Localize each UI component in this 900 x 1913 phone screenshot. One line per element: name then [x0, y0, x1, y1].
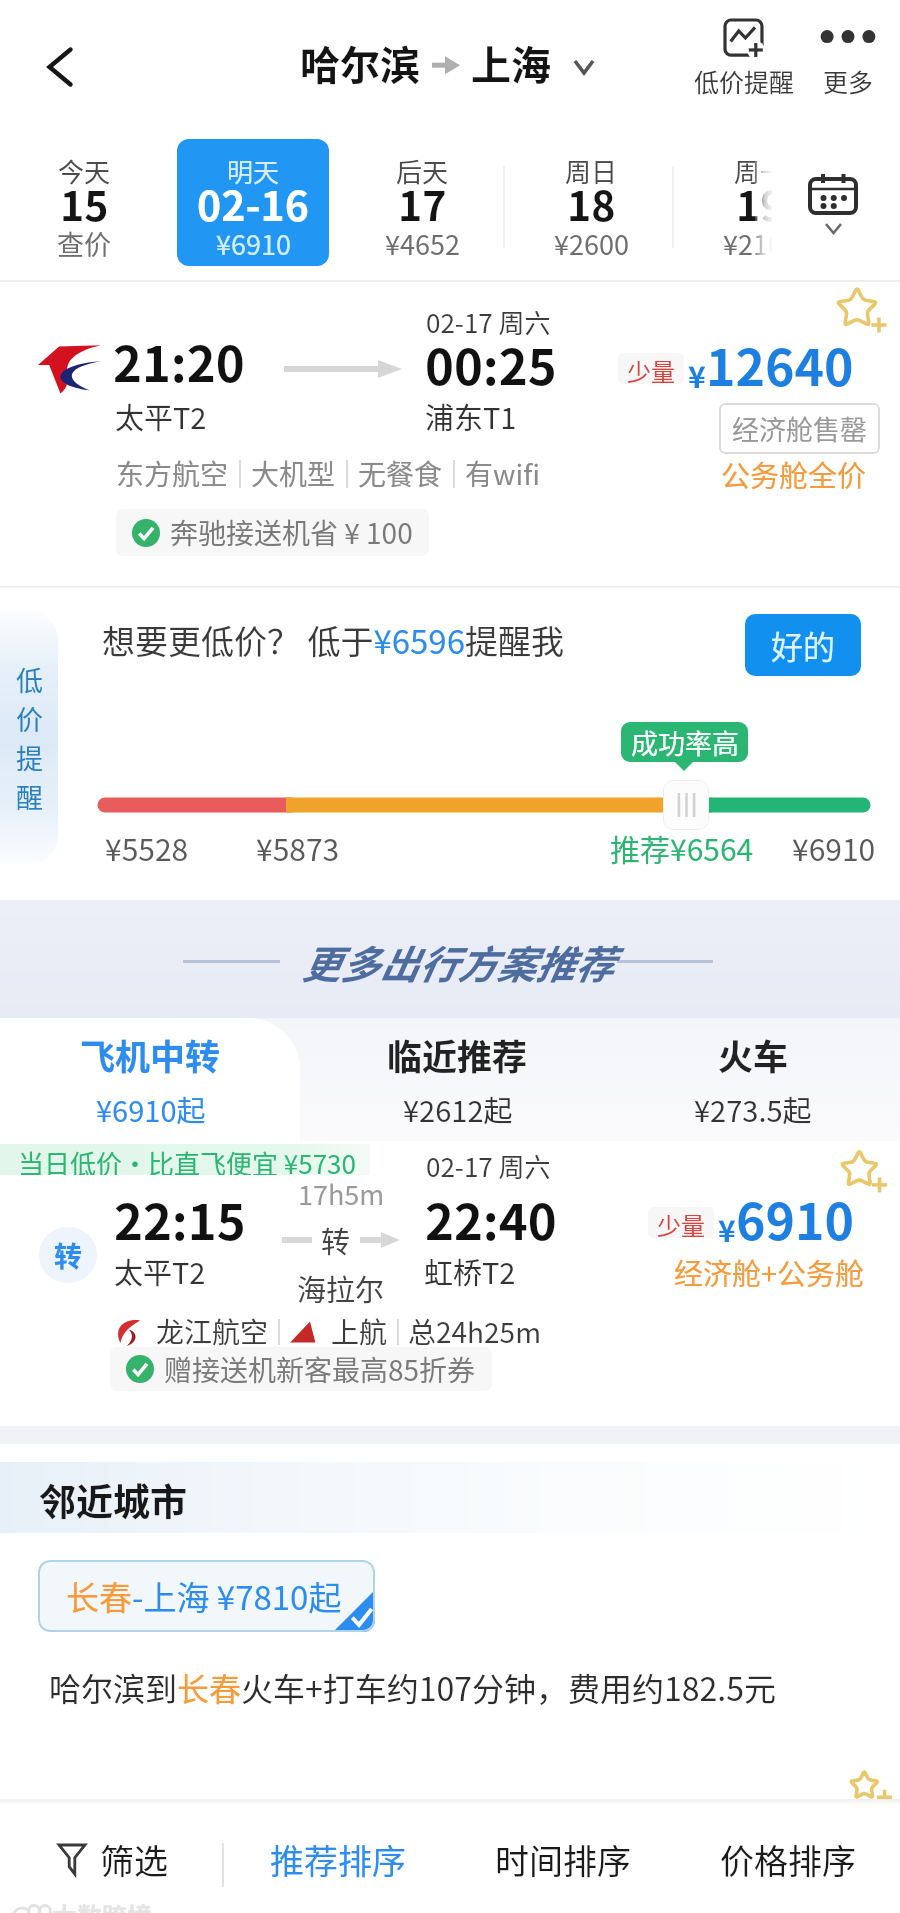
staticText: 明天 [227, 152, 280, 190]
staticText: 总24h25m [408, 1311, 542, 1352]
staticText: 12640 [706, 328, 854, 400]
staticText: 上海 [471, 34, 551, 92]
staticText: 奔驰接送机省 ¥ 100 [170, 512, 413, 553]
staticText: 公务舱全价 [721, 453, 867, 495]
staticText: 周一 [734, 152, 787, 190]
button[interactable]: 筛选 [0, 1805, 225, 1913]
button[interactable]: 价格排序 [675, 1805, 900, 1913]
staticText: 当日低价·比直飞便宜 ¥5730 [18, 1144, 356, 1175]
staticText: 浦东T1 [425, 395, 517, 437]
button[interactable]: 更多 [796, 0, 900, 118]
staticText: 后天 [396, 152, 449, 190]
button[interactable]: 后天 [346, 139, 498, 266]
staticText: 想要更低价？ 低于¥6596提醒我 [102, 616, 564, 664]
button[interactable]: 周一 [684, 139, 836, 266]
staticText: 火车 [718, 1029, 789, 1080]
staticText: 提 [16, 738, 43, 777]
staticText: 哈尔滨到长春火车+打车约107分钟，费用约182.5元 [49, 1664, 776, 1710]
button[interactable]: Back [22, 8, 98, 126]
button[interactable]: 周日 [515, 139, 667, 266]
button[interactable]: 时间排序 [450, 1805, 675, 1913]
staticText: 大数跨境 [52, 1897, 153, 1913]
staticText: ¥5528 [105, 826, 189, 869]
staticText: 推荐¥6564 [610, 826, 754, 869]
staticText: 虹桥T2 [424, 1250, 516, 1292]
staticText: 更多出行方案推荐 [301, 934, 614, 990]
staticText: 东方航空 [116, 453, 229, 494]
staticText: 飞机中转 [80, 1029, 221, 1080]
staticText: 太平T2 [114, 1250, 206, 1292]
button[interactable]: 奔驰接送机省 ¥ 100 [132, 509, 413, 556]
staticText: 转 [54, 1235, 83, 1276]
button[interactable]: 低价提醒 [692, 0, 796, 118]
staticText: 好的 [771, 622, 836, 668]
staticText: 经济舱售罄 [732, 409, 867, 448]
button[interactable]: 推荐排序 [225, 1805, 450, 1913]
button[interactable]: 火车 [605, 1018, 900, 1141]
staticText: 醒 [16, 777, 43, 816]
staticText: 22:15 [114, 1183, 246, 1254]
button[interactable]: 明天 [177, 139, 329, 266]
staticText: 15 [60, 173, 109, 232]
staticText: 19 [736, 173, 785, 232]
staticText: 低 [16, 660, 43, 699]
staticText: 02-17 周六 [426, 1147, 551, 1185]
button[interactable]: 好的 [745, 614, 861, 676]
staticText: 02-16 [197, 173, 309, 232]
staticText: 哈尔滨 [300, 34, 420, 92]
staticText: 少量 [627, 353, 675, 384]
staticText: ¥6910 [216, 224, 291, 263]
staticText: ¥ [718, 1207, 736, 1250]
staticText: 17 [398, 173, 447, 232]
staticText: ¥ [688, 353, 706, 396]
button[interactable]: 飞机中转 [0, 1018, 300, 1141]
button[interactable]: Favorite [840, 1149, 886, 1195]
staticText: 邻近城市 [39, 1473, 187, 1527]
staticText: 龙江航空 [156, 1311, 269, 1352]
staticText: 价 [16, 699, 43, 738]
staticText: ¥2600 [554, 224, 629, 263]
staticText: 查价 [57, 224, 111, 263]
staticText: 时间排序 [495, 1835, 631, 1884]
staticText: 赠接送机新客最高85折券 [164, 1349, 476, 1390]
staticText: ¥4652 [385, 224, 460, 263]
button[interactable]: Calendar [772, 118, 900, 280]
staticText: 成功率高 [631, 723, 739, 762]
staticText: 周日 [565, 152, 618, 190]
staticText: ¥6910 [792, 826, 876, 869]
staticText: ¥5873 [256, 826, 340, 869]
button[interactable]: 长春 [38, 1560, 375, 1632]
button[interactable]: 临近推荐 [310, 1018, 605, 1141]
staticText: 22:40 [425, 1183, 557, 1254]
staticText: 17h5m [298, 1174, 385, 1213]
staticText: 6910 [736, 1182, 854, 1254]
staticText: 02-17 周六 [426, 303, 551, 341]
staticText: ¥6910起 [96, 1088, 206, 1130]
button[interactable]: Price slider [663, 780, 709, 830]
button[interactable]: 今天 [8, 139, 160, 266]
staticText: 更多 [823, 63, 874, 99]
staticText: 21:20 [113, 325, 245, 396]
staticText: 海拉尔 [297, 1267, 385, 1309]
staticText: 少量 [657, 1207, 705, 1238]
staticText: 推荐排序 [270, 1835, 406, 1884]
staticText: 上航 [331, 1311, 388, 1352]
staticText: 大机型 [251, 453, 336, 494]
staticText: 长春 [66, 1572, 132, 1620]
staticText: 价格排序 [720, 1835, 856, 1884]
button[interactable]: Favorite [845, 1770, 891, 1805]
staticText: 低价提醒 [694, 63, 795, 99]
staticText: ¥2100 [723, 224, 798, 263]
staticText: 转 [321, 1219, 351, 1261]
staticText: 18 [567, 173, 616, 232]
staticText: 有wifi [465, 453, 540, 494]
staticText: 筛选 [100, 1835, 168, 1884]
button[interactable]: 哈尔滨 [300, 4, 594, 122]
button[interactable]: Favorite [836, 286, 886, 336]
staticText: 今天 [58, 152, 111, 190]
staticText: ¥2612起 [403, 1088, 513, 1130]
staticText: ¥273.5起 [694, 1088, 812, 1130]
staticText: -上海 ¥7810起 [132, 1572, 342, 1620]
button[interactable]: 赠接送机新客最高85折券 [126, 1347, 476, 1391]
staticText: 临近推荐 [387, 1029, 528, 1080]
